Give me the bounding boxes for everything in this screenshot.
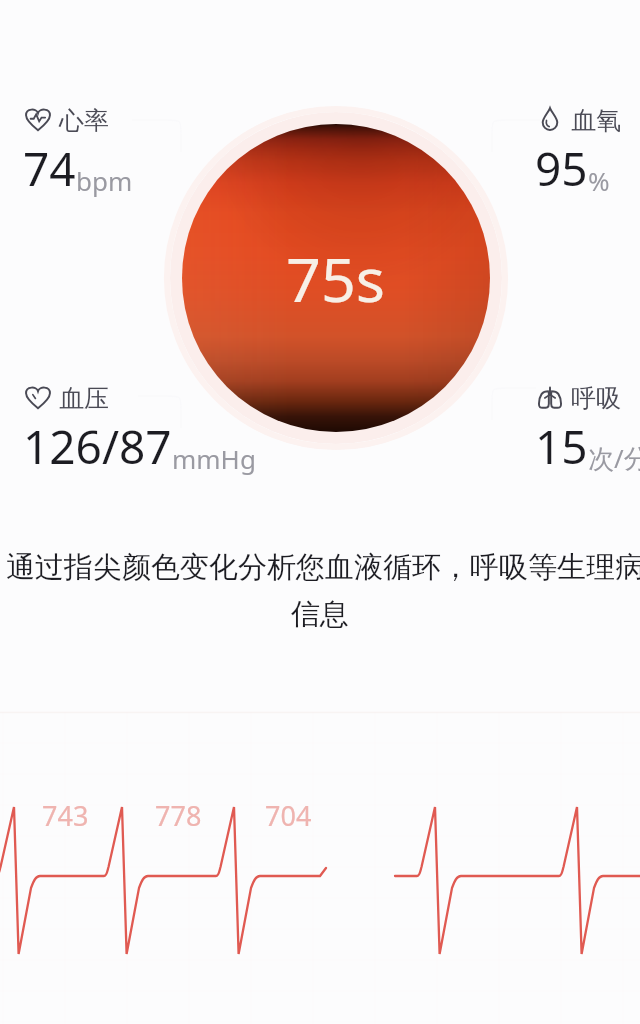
staticText: % [588,163,610,198]
other: 血压 [25,385,51,409]
staticText: 126/87 [23,415,172,478]
button[interactable]: 血压 [23,384,256,478]
staticText: 75s [286,237,386,320]
other: 心率 [25,107,51,131]
button[interactable]: 呼吸 [535,384,640,478]
staticText: 呼吸 [571,383,621,414]
staticText: 704 [265,797,312,834]
staticText: 血压 [59,383,109,414]
staticText: 15 [535,415,588,478]
button[interactable]: 心率 [23,106,133,200]
staticText: mmHg [172,441,256,476]
button[interactable]: 75s [182,124,490,432]
other: 呼吸 [537,385,563,409]
other: 血氧 [537,107,563,131]
staticText: 743 [42,797,89,834]
staticText: 心率 [59,105,109,136]
button[interactable]: 血氧 [535,106,621,200]
staticText: 通过指尖颜色变化分析您血液循环，呼吸等生理病理 [6,549,640,585]
staticText: 信息 [291,596,349,633]
staticText: 74 [23,137,76,200]
staticText: 778 [155,797,202,834]
staticText: 95 [535,137,588,200]
staticText: 次/分 [588,440,640,476]
staticText: bpm [76,163,133,198]
staticText: 血氧 [571,105,621,136]
